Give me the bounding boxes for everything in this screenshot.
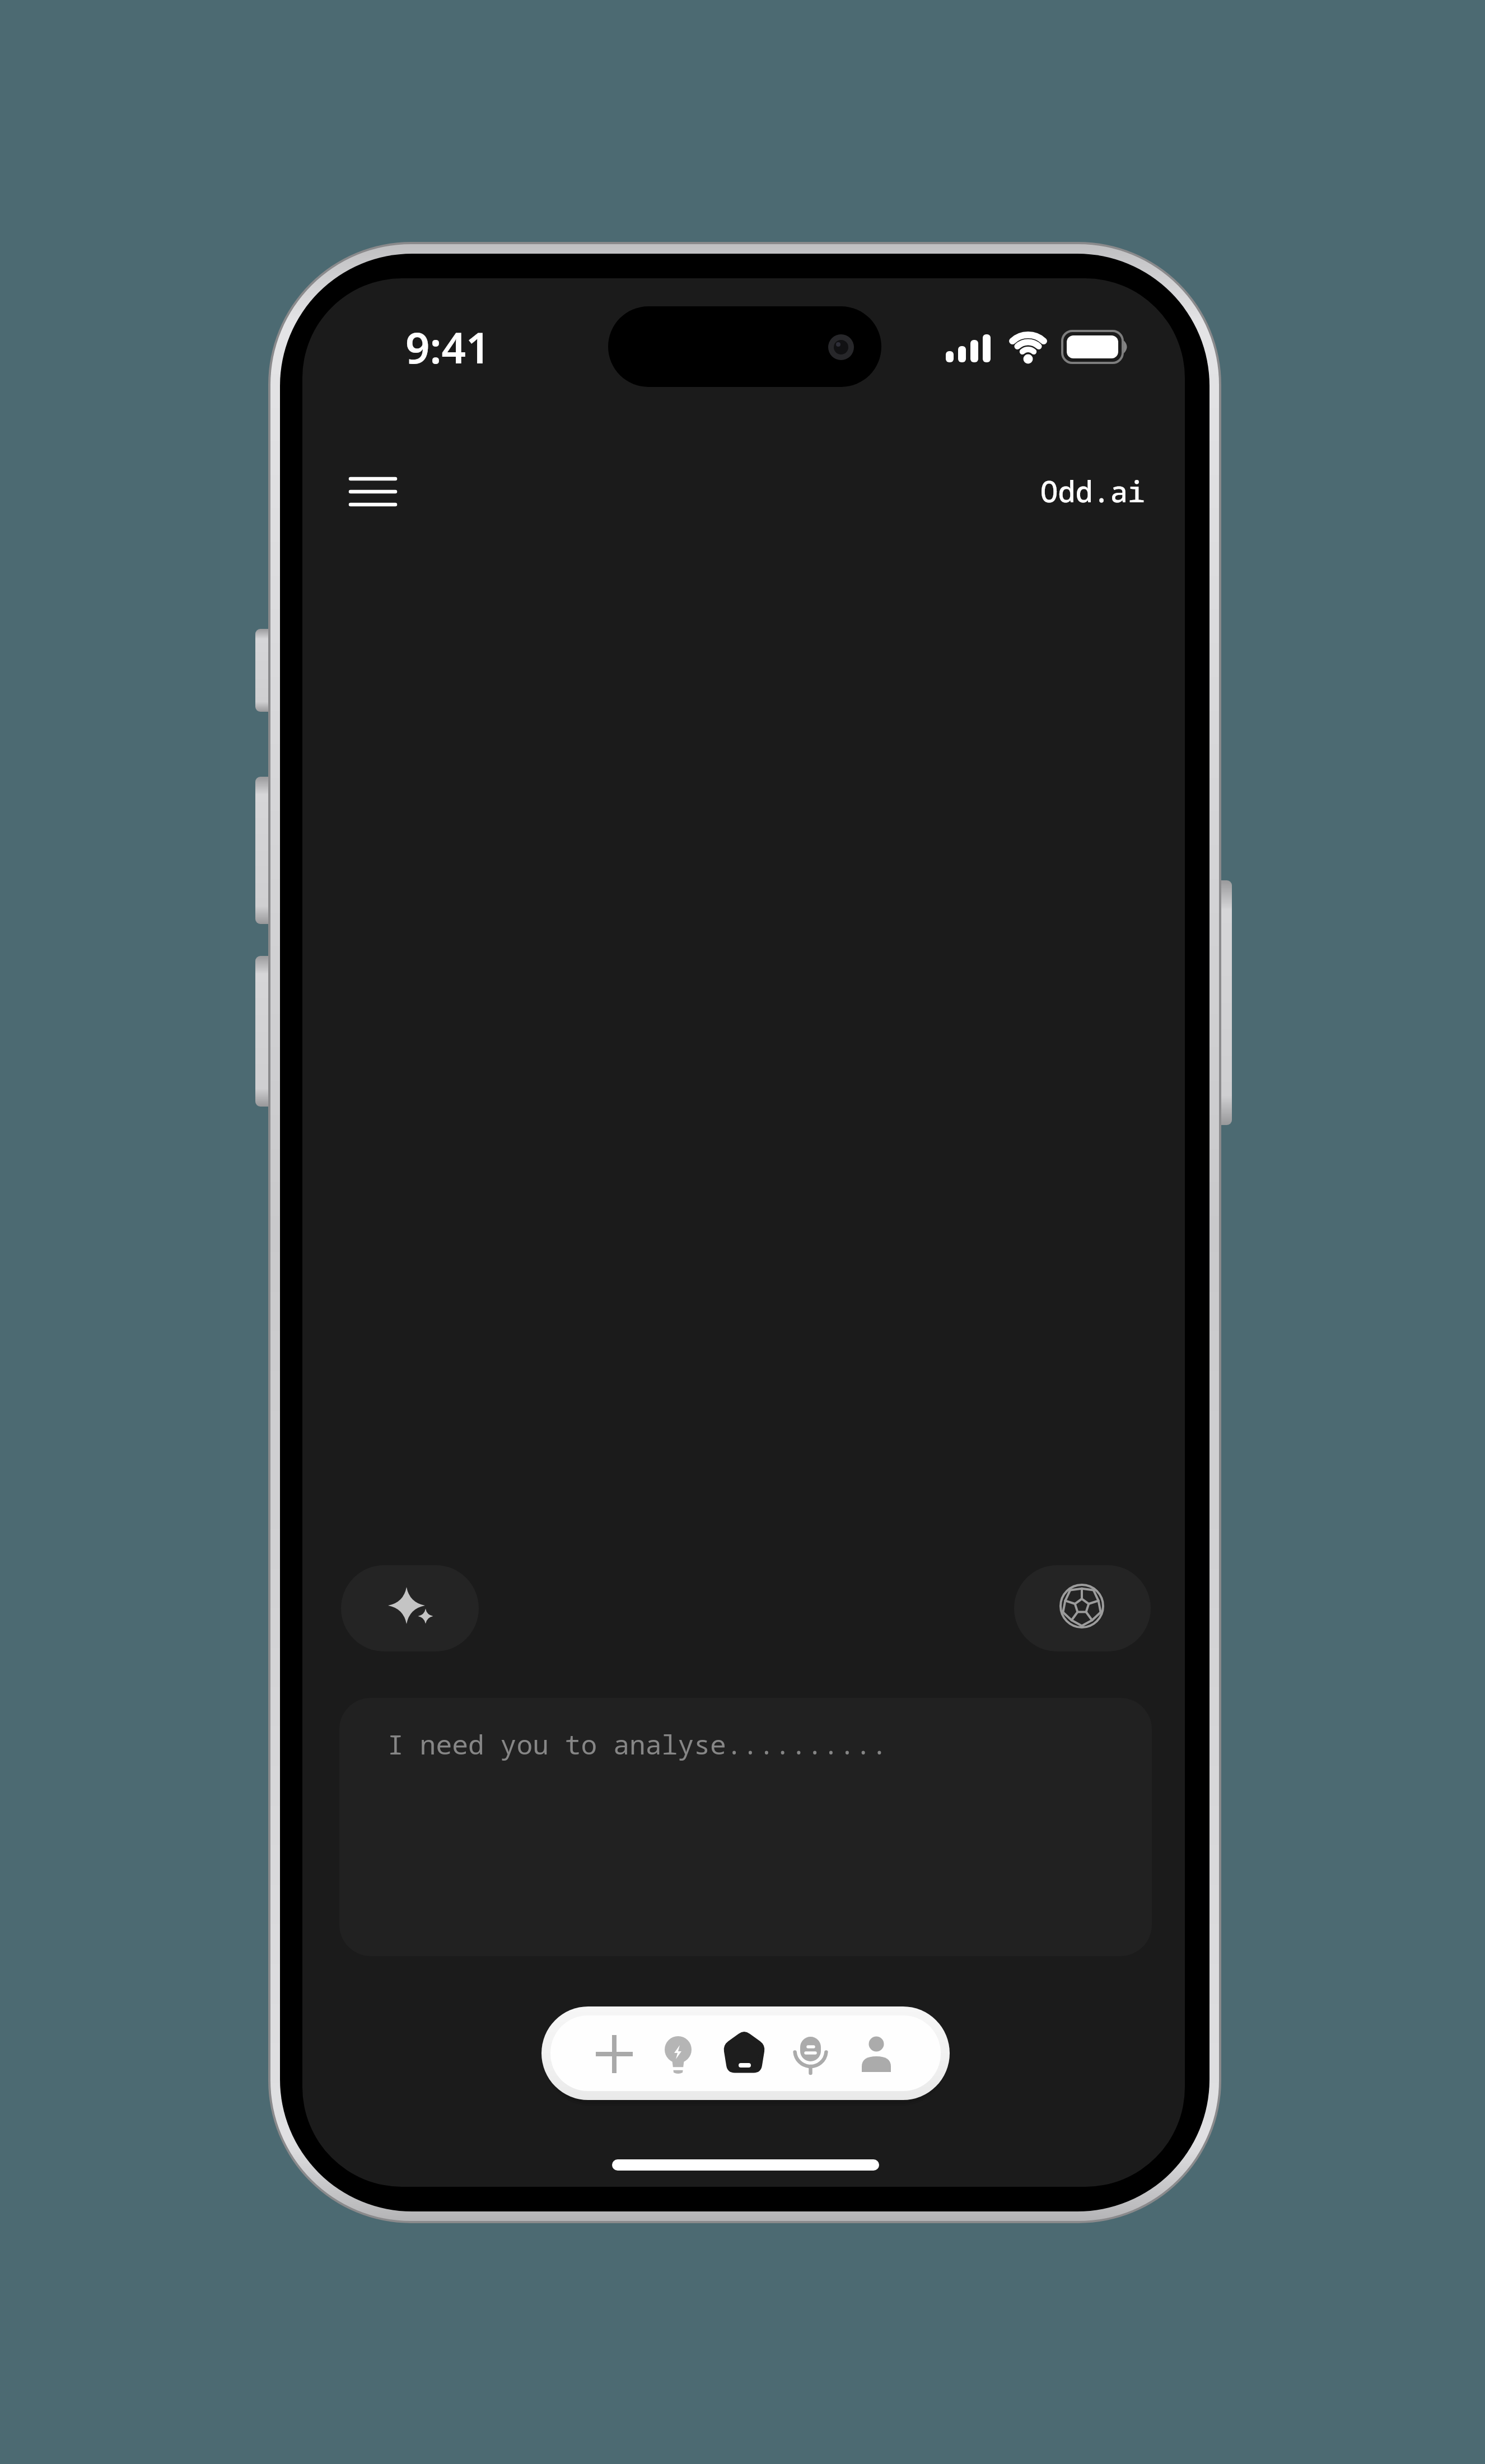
button[interactable] — [1014, 1565, 1151, 1651]
button[interactable] — [715, 2025, 773, 2083]
button[interactable] — [341, 1565, 479, 1651]
button[interactable] — [339, 465, 407, 517]
staticText: I need you to analyse.......... — [387, 1726, 888, 1762]
button[interactable] — [847, 2025, 905, 2083]
staticText: 9:41 — [405, 318, 491, 376]
button[interactable] — [781, 2025, 839, 2083]
staticText: Odd.ai — [1040, 471, 1146, 510]
button[interactable] — [649, 2025, 707, 2083]
button[interactable]: Odd.ai — [978, 471, 1146, 510]
button[interactable]: I need you to analyse.......... — [339, 1698, 1152, 1956]
button[interactable] — [585, 2025, 643, 2083]
